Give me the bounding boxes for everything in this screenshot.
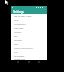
staticText: Camera bbox=[14, 31, 22, 34]
button[interactable]: System info bbox=[11, 58, 47, 60]
button[interactable]: Location bbox=[11, 38, 47, 42]
button[interactable]: Sync bbox=[11, 42, 47, 46]
button[interactable]: Connections bbox=[11, 22, 47, 26]
button[interactable]: Camera bbox=[11, 30, 47, 34]
staticText: Connections bbox=[14, 23, 26, 26]
staticText: Sync bbox=[14, 43, 19, 46]
button[interactable]: Privacy and security bbox=[11, 46, 47, 50]
staticText: Location bbox=[14, 39, 23, 42]
staticText: Mic bbox=[14, 35, 18, 38]
button[interactable]: Apps alert bbox=[11, 26, 47, 30]
staticText: Privacy and security bbox=[14, 47, 33, 50]
staticText: System info bbox=[14, 58, 25, 60]
button[interactable]: Tap an item to edit bbox=[11, 14, 47, 18]
staticText: Settings bbox=[13, 10, 24, 14]
button[interactable]: Wi-Fi bbox=[11, 18, 47, 22]
staticText: Ads bbox=[14, 51, 18, 54]
button[interactable]: Mic bbox=[11, 34, 47, 38]
button[interactable]: Languages bbox=[11, 54, 47, 58]
staticText: Languages bbox=[14, 55, 25, 58]
staticText: Wi-Fi bbox=[14, 19, 19, 22]
staticText: Apps alert bbox=[14, 27, 24, 30]
button[interactable]: Ads bbox=[11, 50, 47, 54]
staticText: Tap an item to edit bbox=[14, 15, 32, 18]
